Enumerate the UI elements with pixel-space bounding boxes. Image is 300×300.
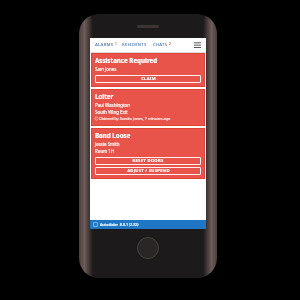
staticText: ALARMS — [95, 42, 114, 48]
button[interactable]: ADJUST / SUSPEND — [95, 167, 201, 175]
staticText: 2 — [169, 42, 171, 46]
staticText: Assistance Required — [95, 56, 158, 64]
button[interactable]: Assistance Required — [91, 53, 205, 87]
staticText: Room 1H — [95, 148, 115, 154]
button[interactable]: Autodialer 8.0.1 (2.32) — [90, 220, 206, 229]
staticText: Jessie Smith — [95, 141, 120, 147]
button[interactable]: CLAIM — [95, 75, 201, 83]
button[interactable]: RESET DOORS — [95, 157, 201, 165]
button[interactable]: Menu — [192, 40, 202, 50]
button[interactable]: Band Loose — [91, 128, 205, 179]
staticText: Band Loose — [95, 131, 131, 139]
button[interactable]: RESIDENTS — [122, 42, 147, 48]
staticText: Paul Washington — [95, 102, 130, 108]
button[interactable]: ALARMS — [95, 42, 116, 48]
staticText: Loiter — [95, 92, 114, 100]
staticText: RESIDENTS — [122, 42, 147, 48]
button[interactable]: CHATS — [153, 42, 170, 48]
staticText: CHATS — [153, 42, 168, 48]
staticText: Claimed by Sandra Jones, 7 minutes ago — [99, 116, 171, 121]
staticText: Autodialer 8.0.1 (2.32) — [100, 222, 139, 227]
button[interactable]: Loiter — [91, 89, 205, 126]
staticText: CLAIM — [141, 76, 156, 82]
staticText: 1 — [115, 42, 117, 46]
staticText: RESET DOORS — [132, 158, 164, 164]
staticText: ADJUST / SUSPEND — [127, 168, 170, 174]
staticText: South Wing Exit — [95, 109, 128, 115]
staticText: Sam Jones — [95, 66, 117, 72]
